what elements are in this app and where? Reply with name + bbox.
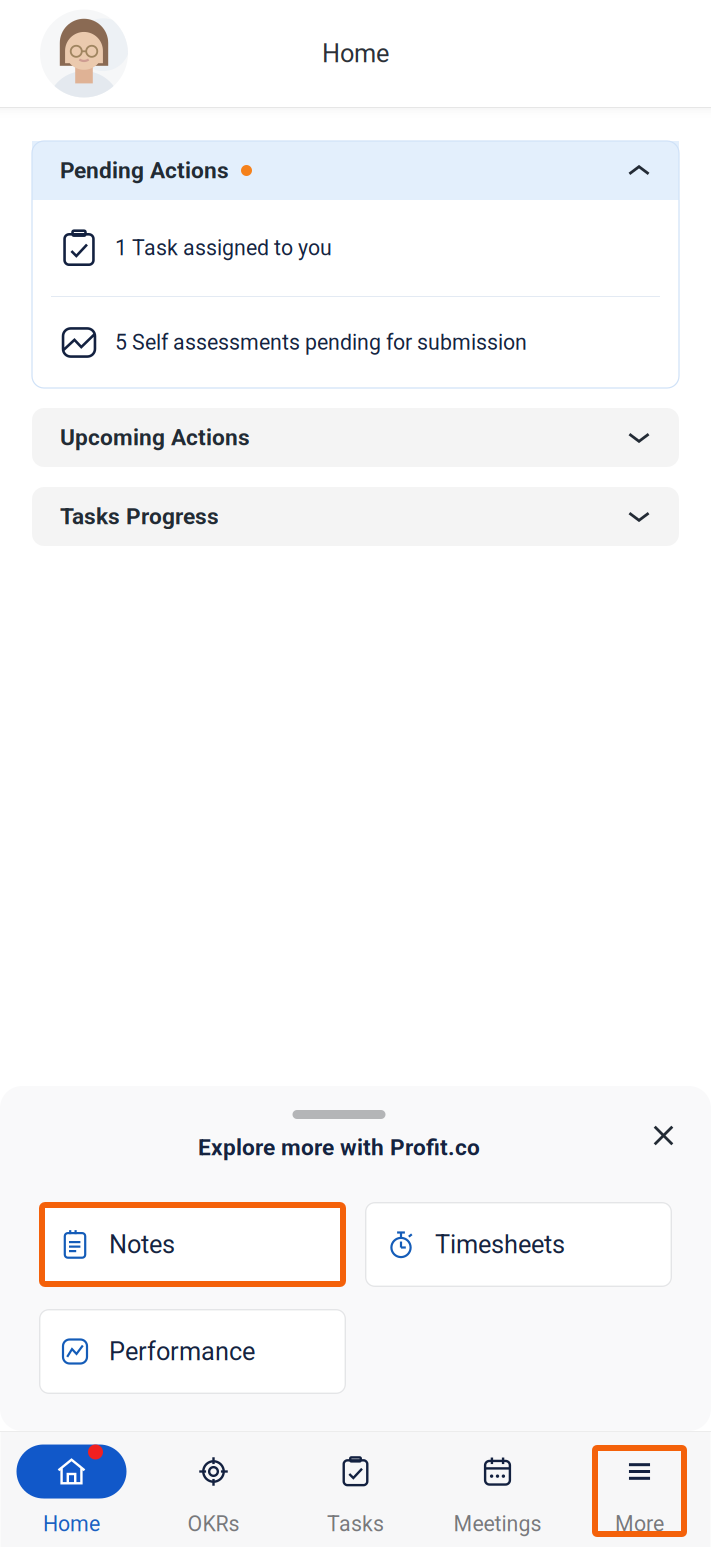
staticText: 1 Task assigned to you — [115, 235, 332, 260]
staticText: Explore more with Profit.co — [198, 1134, 480, 1161]
staticText: Pending Actions — [60, 157, 229, 184]
button[interactable]: Profile — [40, 9, 128, 97]
button[interactable]: OKRs — [142, 1435, 284, 1544]
staticText: 5 Self assessments pending for submissio… — [115, 330, 527, 355]
staticText: Tasks Progress — [60, 503, 219, 530]
button[interactable]: Notes — [39, 1202, 346, 1287]
button[interactable]: Home — [0, 1435, 142, 1544]
staticText: Meetings — [453, 1511, 541, 1536]
staticText: Home — [43, 1511, 100, 1536]
staticText: Performance — [109, 1337, 255, 1366]
staticText: Notes — [109, 1230, 175, 1259]
staticText: OKRs — [187, 1511, 239, 1536]
button[interactable]: Pending Actions — [32, 141, 679, 200]
staticText: Home — [322, 39, 389, 68]
staticText: Timesheets — [435, 1230, 565, 1259]
staticText: Upcoming Actions — [60, 424, 250, 451]
button[interactable]: Close — [653, 1119, 711, 1146]
staticText: Tasks — [327, 1511, 384, 1536]
button[interactable]: More — [568, 1435, 710, 1544]
staticText: More — [615, 1511, 664, 1536]
button[interactable]: 5 Self assessments pending for submissio… — [32, 297, 679, 388]
button[interactable]: Performance — [39, 1309, 346, 1394]
button[interactable]: Upcoming Actions — [32, 408, 679, 467]
button[interactable]: Timesheets — [365, 1202, 672, 1287]
button[interactable]: Tasks — [284, 1435, 426, 1544]
button[interactable]: 1 Task assigned to you — [32, 200, 679, 296]
button[interactable]: Tasks Progress — [32, 487, 679, 546]
button[interactable]: Meetings — [426, 1435, 568, 1544]
